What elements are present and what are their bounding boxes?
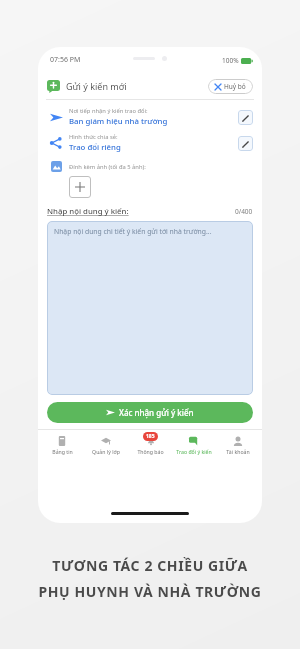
staticText: Trao đổi riêng xyxy=(69,142,121,153)
staticText: Hình thức chia sẻ: xyxy=(69,133,118,141)
staticText: Huỷ bỏ xyxy=(224,82,246,91)
staticText: Thông báo xyxy=(137,448,164,455)
staticText: Tài khoản xyxy=(226,448,250,455)
staticText: 0/400 xyxy=(235,207,253,216)
staticText: Nơi tiếp nhận ý kiến trao đổi: xyxy=(69,107,148,115)
button[interactable]: Quản lý lớp xyxy=(84,433,128,457)
button[interactable]: Bảng tin xyxy=(40,433,84,457)
staticText: Xác nhận gửi ý kiến xyxy=(119,407,194,418)
staticText: 100% xyxy=(222,56,239,65)
staticText: Bảng tin xyxy=(52,448,73,455)
button[interactable]: Xác nhận gửi ý kiến xyxy=(47,402,253,423)
staticText: Nhập nội dung chi tiết ý kiến gửi tới nh… xyxy=(54,227,212,236)
staticText: 185 xyxy=(146,433,155,440)
staticText: TƯƠNG TÁC 2 CHIỀU GIỮA xyxy=(52,556,248,575)
staticText: Đính kèm ảnh (tối đa 5 ảnh): xyxy=(69,163,146,171)
button[interactable]: Nhập nội dung chi tiết ý kiến gửi tới nh… xyxy=(47,221,253,395)
button[interactable]: Huỷ bỏ xyxy=(208,79,253,94)
button[interactable]: Chỉnh sửa xyxy=(238,110,253,125)
button[interactable]: Nơi tiếp nhận ý kiến trao đổi: xyxy=(38,107,262,127)
staticText: 07:56 PM xyxy=(50,55,81,65)
button[interactable]: 185 xyxy=(128,433,172,457)
button[interactable]: Hình thức chia sẻ: xyxy=(38,133,262,153)
button[interactable]: Tài khoản xyxy=(216,433,260,457)
staticText: Trao đổi ý kiến xyxy=(176,448,212,455)
staticText: Nhập nội dung ý kiến: xyxy=(47,206,129,217)
button[interactable]: Trao đổi ý kiến xyxy=(172,433,216,457)
staticText: Ban giám hiệu nhà trường xyxy=(69,116,168,127)
staticText: Gửi ý kiến mới xyxy=(66,80,127,92)
staticText: Quản lý lớp xyxy=(92,448,120,455)
button[interactable]: Chỉnh sửa xyxy=(238,136,253,151)
staticText: PHỤ HUYNH VÀ NHÀ TRƯỜNG xyxy=(38,582,262,601)
button[interactable]: Thêm ảnh xyxy=(69,176,91,198)
